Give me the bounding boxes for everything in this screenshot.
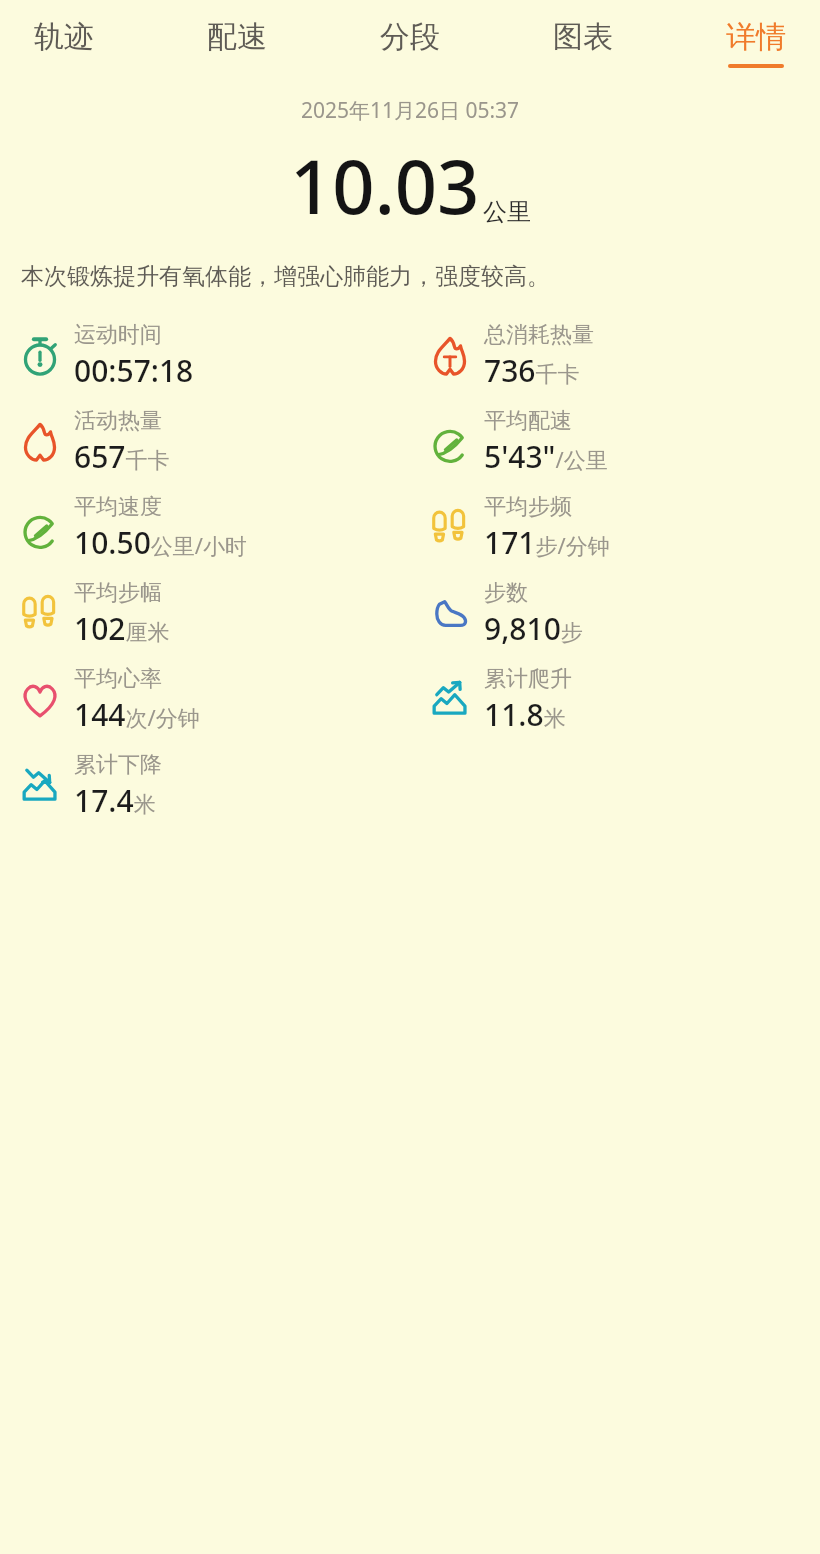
button[interactable]: 步数 bbox=[410, 571, 820, 657]
staticText: 5'43"/公里 bbox=[484, 436, 608, 477]
staticText: 运动时间 bbox=[74, 321, 162, 349]
button[interactable]: 累计爬升 bbox=[410, 657, 820, 743]
other: 平均步幅 bbox=[14, 588, 66, 640]
staticText: 2025年11月26日 05:37 bbox=[0, 96, 820, 125]
staticText: 平均配速 bbox=[484, 407, 572, 435]
staticText: 累计爬升 bbox=[484, 665, 572, 693]
staticText: 步数 bbox=[484, 579, 528, 607]
staticText: 平均速度 bbox=[74, 493, 162, 521]
staticText: 10.03 bbox=[290, 135, 480, 236]
button[interactable]: 活动热量 bbox=[0, 399, 410, 485]
button[interactable]: 详情 bbox=[720, 14, 792, 72]
button[interactable]: 平均配速 bbox=[410, 399, 820, 485]
button[interactable]: 运动时间 bbox=[0, 313, 410, 399]
staticText: 17.4米 bbox=[74, 780, 156, 821]
button[interactable]: 图表 bbox=[547, 14, 619, 68]
other: 平均配速 bbox=[424, 416, 476, 468]
other: 步数 bbox=[424, 588, 476, 640]
other: 平均步频 bbox=[424, 502, 476, 554]
other: 运动时间 bbox=[14, 330, 66, 382]
staticText: 详情 bbox=[726, 18, 786, 56]
staticText: 公里 bbox=[483, 197, 531, 227]
staticText: 图表 bbox=[553, 18, 613, 56]
button[interactable]: 平均速度 bbox=[0, 485, 410, 571]
button[interactable]: 累计下降 bbox=[0, 743, 410, 829]
staticText: 00:57:18 bbox=[74, 350, 194, 391]
staticText: 102厘米 bbox=[74, 608, 170, 649]
staticText: 144次/分钟 bbox=[74, 694, 200, 735]
other: 总消耗热量 bbox=[424, 330, 476, 382]
staticText: 累计下降 bbox=[74, 751, 162, 779]
button[interactable]: 总消耗热量 bbox=[410, 313, 820, 399]
other: 累计爬升 bbox=[424, 674, 476, 726]
staticText: 平均步幅 bbox=[74, 579, 162, 607]
button[interactable]: 平均步幅 bbox=[0, 571, 410, 657]
staticText: 736千卡 bbox=[484, 350, 580, 391]
staticText: 平均步频 bbox=[484, 493, 572, 521]
button[interactable]: 轨迹 bbox=[28, 14, 100, 68]
staticText: 平均心率 bbox=[74, 665, 162, 693]
staticText: 轨迹 bbox=[34, 18, 94, 56]
button[interactable]: 平均步频 bbox=[410, 485, 820, 571]
staticText: 本次锻炼提升有氧体能，增强心肺能力，强度较高。 bbox=[21, 262, 799, 291]
button[interactable]: 配速 bbox=[201, 14, 273, 68]
staticText: 11.8米 bbox=[484, 694, 566, 735]
staticText: 活动热量 bbox=[74, 407, 162, 435]
other: 平均心率 bbox=[14, 674, 66, 726]
staticText: 9,810步 bbox=[484, 608, 583, 649]
staticText: 10.50公里/小时 bbox=[74, 522, 247, 563]
staticText: 分段 bbox=[380, 18, 440, 56]
other: 累计下降 bbox=[14, 760, 66, 812]
staticText: 657千卡 bbox=[74, 436, 170, 477]
button[interactable]: 分段 bbox=[374, 14, 446, 68]
staticText: 总消耗热量 bbox=[484, 321, 594, 349]
staticText: 171步/分钟 bbox=[484, 522, 610, 563]
other: 平均速度 bbox=[14, 502, 66, 554]
staticText: 配速 bbox=[207, 18, 267, 56]
button[interactable]: 平均心率 bbox=[0, 657, 410, 743]
other: 活动热量 bbox=[14, 416, 66, 468]
